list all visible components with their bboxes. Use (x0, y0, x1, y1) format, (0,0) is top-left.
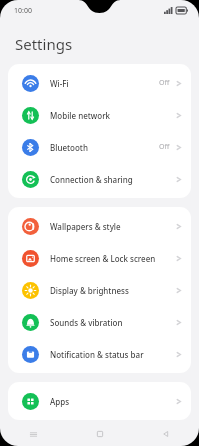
staticText: Mobile network (50, 110, 176, 121)
button[interactable]: Apps (8, 385, 191, 417)
staticText: Sounds & vibration (50, 317, 176, 328)
button[interactable]: Display & brightness (8, 274, 191, 306)
staticText: 10:00 (14, 6, 32, 16)
staticText: Off (159, 142, 170, 152)
staticText: Notification & status bar (50, 349, 176, 360)
staticText: Home screen & Lock screen (50, 253, 176, 264)
button[interactable]: Sounds & vibration (8, 306, 191, 338)
staticText: Settings (15, 34, 73, 54)
button[interactable]: Recent apps (0, 422, 67, 446)
staticText: Off (159, 78, 170, 88)
button[interactable]: Back (133, 422, 199, 446)
button[interactable]: Wi-Fi (8, 67, 191, 99)
button[interactable]: Home (67, 422, 133, 446)
staticText: Connection & sharing (50, 174, 176, 185)
button[interactable]: Wallpapers & style (8, 210, 191, 242)
button[interactable]: Bluetooth (8, 131, 191, 163)
button[interactable]: Home screen & Lock screen (8, 242, 191, 274)
staticText: Wallpapers & style (50, 221, 176, 232)
button[interactable]: Notification & status bar (8, 338, 191, 370)
staticText: Bluetooth (50, 142, 159, 153)
staticText: Wi-Fi (50, 78, 159, 89)
staticText: Apps (50, 396, 176, 407)
button[interactable]: Mobile network (8, 99, 191, 131)
button[interactable]: Connection & sharing (8, 163, 191, 195)
staticText: Display & brightness (50, 285, 176, 296)
